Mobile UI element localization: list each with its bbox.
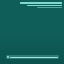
button[interactable]: Title xyxy=(2,2,62,6)
button[interactable]: Open xyxy=(6,55,59,59)
